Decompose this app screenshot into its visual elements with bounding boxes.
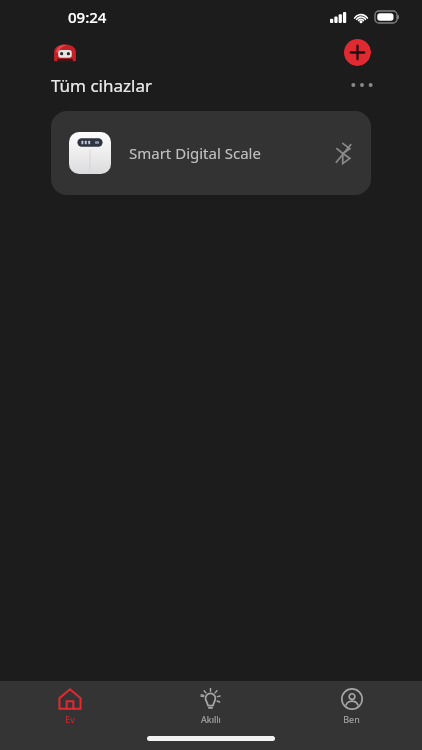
staticText: Ev — [65, 713, 75, 725]
button[interactable]: Add device — [343, 38, 371, 66]
button[interactable]: Bluetooth disconnected — [329, 139, 357, 167]
button[interactable]: Ben — [281, 681, 422, 731]
button[interactable]: Ev — [0, 681, 140, 731]
staticText: Smart Digital Scale — [129, 143, 261, 163]
button[interactable]: Smart Digital Scale — [51, 111, 371, 195]
button[interactable]: Profile avatar — [51, 38, 79, 66]
staticText: Akıllı — [201, 713, 221, 725]
button[interactable]: More options — [346, 71, 378, 99]
staticText: Tüm cihazlar — [51, 74, 152, 97]
button[interactable]: Akıllı — [140, 681, 281, 731]
staticText: Ben — [343, 713, 360, 725]
staticText: 09:24 — [68, 7, 107, 27]
